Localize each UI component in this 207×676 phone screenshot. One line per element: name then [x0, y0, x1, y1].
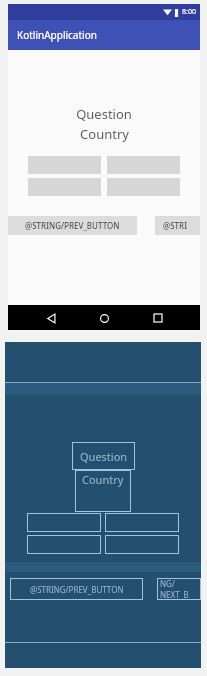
button[interactable]: @STRI [155, 216, 200, 235]
staticText: Question [76, 105, 132, 123]
staticText: @STRI [163, 220, 187, 231]
staticText: 8:00 [182, 7, 196, 17]
staticText: Question [80, 449, 128, 464]
staticText: @STRING/PREV_BUTTON [25, 220, 120, 231]
button[interactable]: Recents [147, 307, 169, 329]
button[interactable]: Answer option [27, 535, 101, 554]
button[interactable]: Answer option [105, 535, 179, 554]
button[interactable]: Answer option [27, 513, 101, 532]
button[interactable]: NG/NEXT_B [157, 578, 201, 600]
button[interactable]: Back [40, 307, 62, 329]
staticText: Country [80, 125, 129, 143]
button[interactable]: Answer option [105, 513, 179, 532]
staticText: NG/NEXT_B [160, 578, 201, 600]
button[interactable]: @STRING/PREV_BUTTON [10, 578, 143, 600]
staticText: Country [82, 472, 124, 487]
button[interactable]: @STRING/PREV_BUTTON [8, 216, 137, 235]
staticText: KotlinApplication [17, 28, 97, 42]
staticText: @STRING/PREV_BUTTON [30, 584, 124, 595]
button[interactable]: Home [93, 307, 115, 329]
